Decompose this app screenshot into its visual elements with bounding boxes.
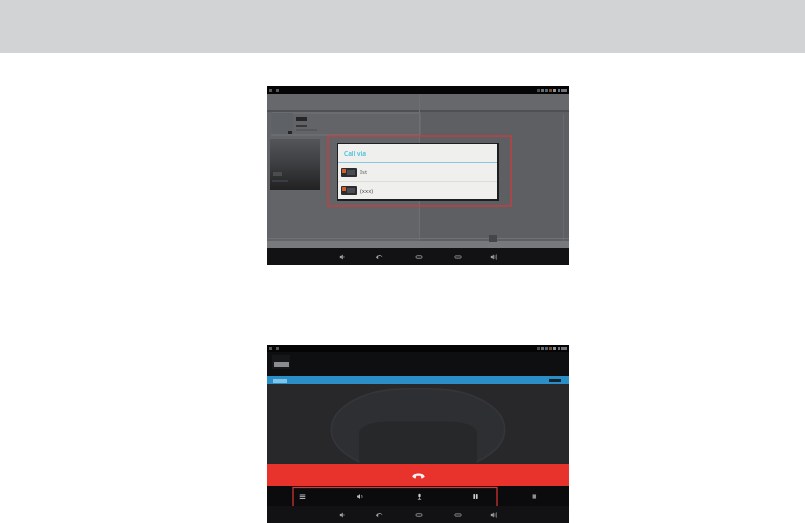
button[interactable]: Contact photo <box>270 139 320 190</box>
button[interactable]: Volume down <box>336 248 349 265</box>
button[interactable]: Ist <box>338 163 497 181</box>
button[interactable]: Back <box>372 506 385 523</box>
button[interactable]: Hold <box>468 486 483 506</box>
button[interactable]: More <box>527 486 542 506</box>
button[interactable]: Recent apps <box>451 248 464 265</box>
button[interactable]: Speaker <box>352 486 367 506</box>
button[interactable]: Home <box>412 506 425 523</box>
button[interactable]: (xxx) <box>338 182 497 199</box>
staticText: Call via <box>344 149 366 158</box>
button[interactable]: Dialpad <box>295 486 310 506</box>
button[interactable]: Volume up <box>487 506 500 523</box>
staticText: Ist <box>360 168 368 176</box>
button[interactable]: Mute <box>412 486 427 506</box>
button[interactable]: Home <box>412 248 425 265</box>
button[interactable]: Recent apps <box>451 506 464 523</box>
button[interactable]: Back <box>372 248 385 265</box>
button[interactable]: Contact details <box>272 113 420 135</box>
button[interactable]: Volume up <box>487 248 500 265</box>
button[interactable]: End call <box>267 464 569 486</box>
button[interactable]: Volume down <box>336 506 349 523</box>
staticText: (xxx) <box>360 187 374 195</box>
